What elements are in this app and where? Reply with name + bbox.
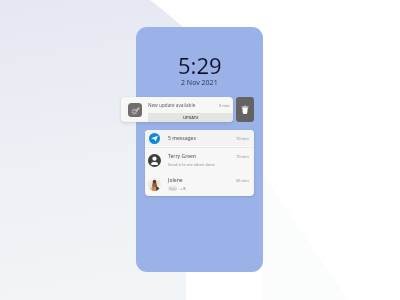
button[interactable]: 5 messages (145, 130, 254, 146)
button[interactable]: Terry Green (145, 148, 254, 172)
button[interactable]: New update available (121, 97, 233, 122)
staticText: Terry Green (168, 153, 197, 160)
staticText: UPDATE (183, 115, 199, 120)
staticText: Reply (169, 187, 177, 191)
staticText: Jolene (168, 177, 183, 184)
button[interactable]: UPDATE (148, 113, 233, 122)
button[interactable]: Delete notification (236, 97, 254, 122)
staticText: Send it to me when done (168, 162, 215, 167)
staticText: 5 messages (168, 135, 196, 142)
staticText: 2 Nov 2021 (181, 78, 218, 88)
staticText: New update available (148, 102, 196, 108)
staticText: 10 min (236, 154, 249, 159)
staticText: 10 min (236, 136, 249, 141)
staticText: 45 min (236, 178, 249, 183)
button[interactable]: Jolene (145, 172, 254, 196)
staticText: 5:29 (178, 50, 222, 80)
staticText: 5 min (219, 103, 230, 108)
staticText: + 8 (180, 186, 186, 191)
